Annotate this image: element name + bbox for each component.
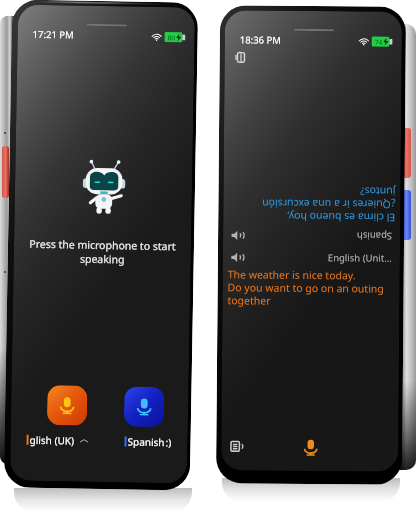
staticText: 18:36 PM — [240, 33, 282, 47]
button[interactable]: Speak Spanish — [124, 386, 164, 427]
button[interactable]: glish (UK) — [26, 433, 89, 448]
button[interactable]: Play English audio — [231, 251, 243, 263]
staticText: 74 — [375, 37, 383, 47]
staticText: glish (UK) — [29, 433, 75, 448]
staticText: Spanish — [127, 434, 165, 449]
staticText: Press the microphone to start speaking — [18, 237, 187, 267]
button[interactable]: Split screen — [235, 51, 247, 63]
staticText: :) — [165, 435, 172, 449]
staticText: The weather is nice today. Do you want t… — [227, 267, 398, 309]
button[interactable]: Speak English — [47, 385, 87, 426]
button[interactable]: Play Spanish audio — [231, 229, 243, 241]
button[interactable]: History — [230, 440, 242, 452]
staticText: 80 — [168, 33, 176, 42]
staticText: English (Unit... — [328, 251, 392, 265]
button[interactable]: Spanish — [124, 434, 172, 449]
staticText: Spanish — [356, 229, 392, 243]
staticText: El clima es bueno hoy, ¿Quieres ir a una… — [227, 183, 395, 225]
staticText: 17:21 PM — [33, 28, 75, 41]
button[interactable]: Microphone — [297, 434, 323, 460]
